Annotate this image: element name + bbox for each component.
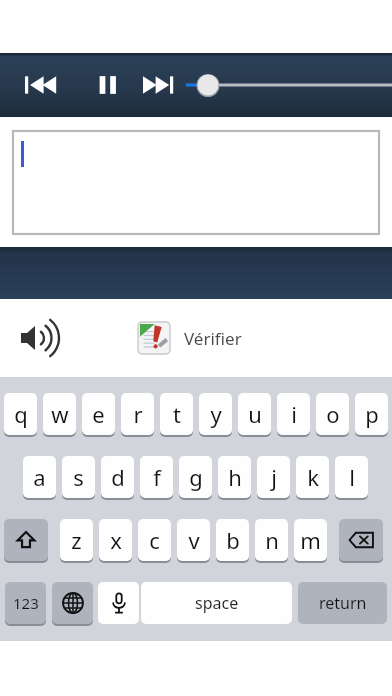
button[interactable]: p — [355, 393, 388, 435]
staticText: v — [188, 525, 200, 555]
staticText: r — [133, 399, 143, 429]
button[interactable]: y — [199, 393, 232, 435]
staticText: e — [92, 399, 105, 429]
staticText: g — [189, 462, 203, 492]
button[interactable]: l — [335, 456, 368, 498]
button[interactable]: n — [255, 519, 288, 561]
button[interactable]: j — [257, 456, 290, 498]
staticText: q — [14, 399, 28, 429]
staticText: p — [365, 399, 379, 429]
button[interactable]: Previous — [14, 53, 66, 117]
button[interactable]: s — [62, 456, 95, 498]
staticText: d — [111, 462, 125, 492]
button[interactable]: Key — [5, 582, 46, 624]
staticText: t — [173, 399, 181, 429]
button[interactable]: Key — [339, 519, 383, 561]
button[interactable] — [13, 131, 379, 234]
button[interactable]: b — [216, 519, 249, 561]
button[interactable]: Next — [132, 53, 184, 117]
staticText: k — [307, 462, 319, 492]
button[interactable]: r — [121, 393, 154, 435]
staticText: c — [149, 525, 160, 555]
button[interactable]: Key — [4, 519, 48, 561]
staticText: Vérifier — [184, 327, 242, 350]
staticText: y — [210, 399, 222, 429]
staticText: i — [291, 399, 297, 429]
button[interactable]: d — [101, 456, 134, 498]
button[interactable]: g — [179, 456, 212, 498]
button[interactable]: u — [238, 393, 271, 435]
button[interactable]: o — [316, 393, 349, 435]
staticText: a — [33, 462, 46, 492]
button[interactable]: m — [294, 519, 327, 561]
staticText: f — [153, 462, 161, 492]
button[interactable]: v — [177, 519, 210, 561]
staticText: w — [51, 399, 69, 429]
button[interactable]: Dictate — [98, 582, 139, 624]
button[interactable]: f — [140, 456, 173, 498]
button[interactable]: e — [82, 393, 115, 435]
button[interactable]: h — [218, 456, 251, 498]
staticText: l — [349, 462, 355, 492]
button[interactable]: space — [141, 582, 292, 624]
button[interactable]: x — [99, 519, 132, 561]
staticText: s — [73, 462, 84, 492]
button[interactable]: q — [4, 393, 37, 435]
button[interactable]: a — [23, 456, 56, 498]
button[interactable]: t — [160, 393, 193, 435]
staticText: o — [326, 399, 340, 429]
button[interactable]: w — [43, 393, 76, 435]
button[interactable]: k — [296, 456, 329, 498]
staticText: h — [228, 462, 242, 492]
staticText: return — [319, 592, 367, 614]
staticText: u — [248, 399, 262, 429]
button[interactable]: i — [277, 393, 310, 435]
button[interactable]: return — [298, 582, 387, 624]
button[interactable]: z — [60, 519, 93, 561]
staticText: z — [71, 525, 82, 555]
staticText: n — [265, 525, 279, 555]
button[interactable]: Speak — [10, 311, 64, 365]
staticText: b — [226, 525, 240, 555]
staticText: x — [110, 525, 122, 555]
button[interactable]: Vérifier — [138, 322, 242, 354]
staticText: space — [195, 592, 239, 614]
button[interactable]: Pause — [82, 53, 134, 117]
staticText: m — [300, 525, 321, 555]
staticText: j — [271, 462, 277, 492]
staticText: 123 — [13, 593, 39, 613]
button[interactable]: c — [138, 519, 171, 561]
button[interactable]: Key — [52, 582, 93, 624]
